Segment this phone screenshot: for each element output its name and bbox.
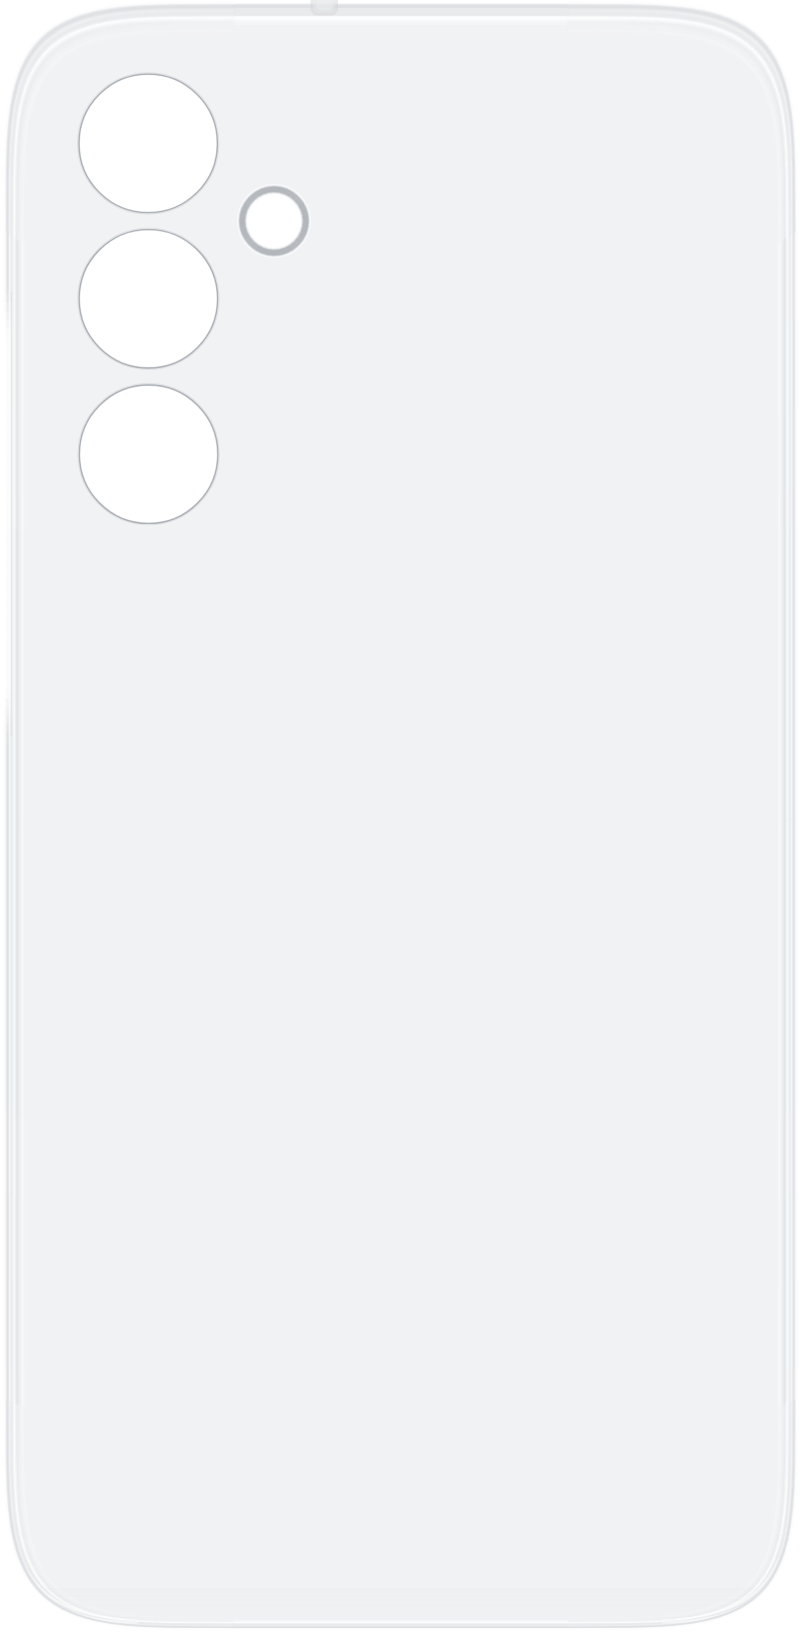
button[interactable]: Clear protective phone case, back view (0, 0, 800, 1634)
